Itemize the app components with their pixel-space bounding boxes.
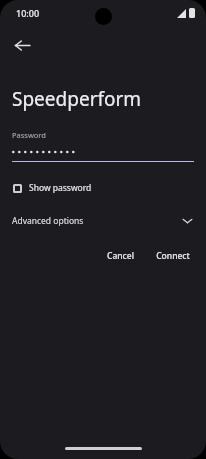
button[interactable]: Advanced options — [0, 211, 206, 231]
staticText: Speedperform — [12, 86, 142, 112]
staticText: Advanced options — [12, 215, 84, 227]
button[interactable]: Show password — [12, 179, 93, 197]
button[interactable]: Connect — [147, 245, 199, 267]
button[interactable]: Cancel — [98, 245, 143, 267]
staticText: Cancel — [107, 250, 134, 262]
button[interactable]: Back — [5, 28, 39, 62]
staticText: 10:00 — [16, 7, 40, 19]
staticText: Connect — [156, 250, 190, 262]
staticText: Password — [12, 130, 46, 140]
staticText: Show password — [29, 182, 92, 194]
